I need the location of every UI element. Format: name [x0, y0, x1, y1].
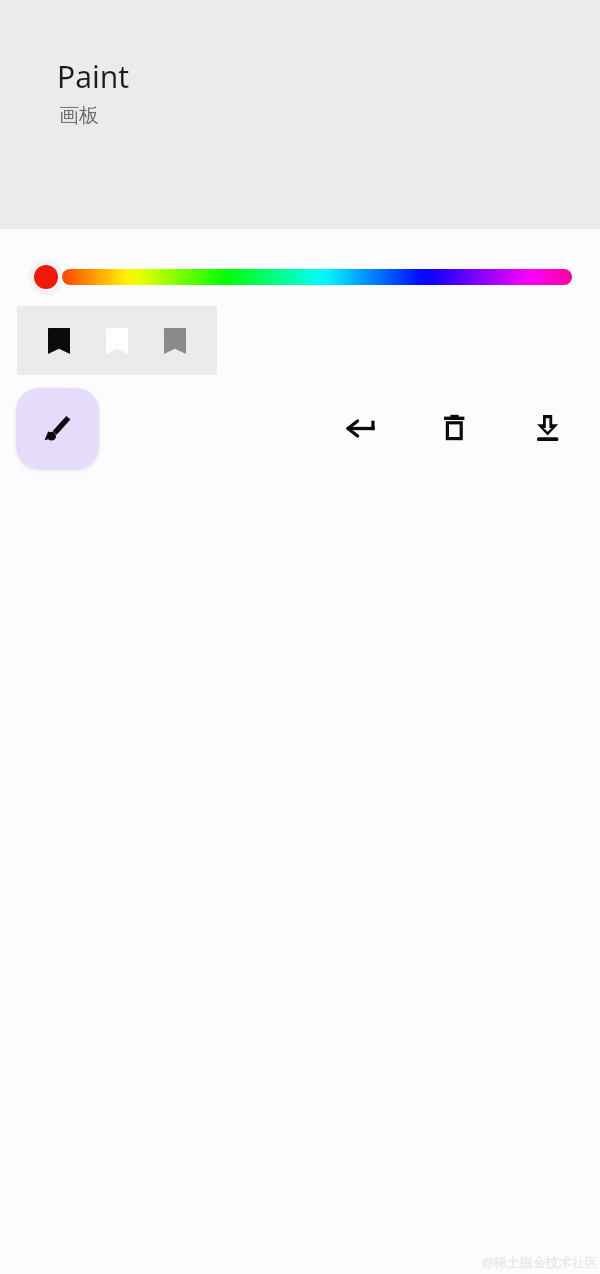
staticText: Paint [57, 56, 130, 97]
button[interactable]: White brush [106, 306, 128, 375]
button[interactable]: Undo [338, 406, 384, 452]
button[interactable]: Save [526, 406, 572, 452]
staticText: @稀土掘金技术社区 [482, 1253, 598, 1271]
button[interactable]: Brush [16, 388, 99, 469]
button[interactable]: Gray brush [164, 306, 186, 375]
button[interactable]: Color slider [24, 256, 576, 298]
button[interactable]: Black brush [48, 306, 70, 375]
button[interactable]: Delete [433, 405, 479, 451]
staticText: 画板 [59, 103, 99, 128]
